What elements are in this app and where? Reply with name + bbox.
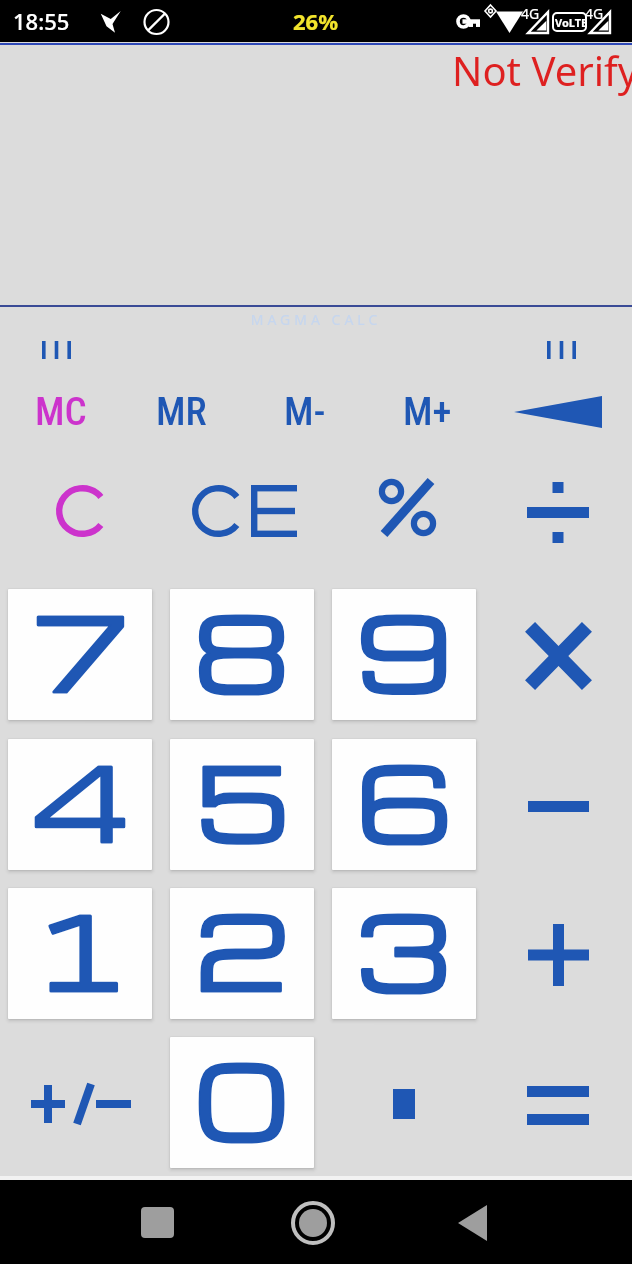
- staticText: 8: [194, 589, 290, 707]
- button[interactable]: Clear: [17, 461, 147, 561]
- button[interactable]: MC: [2, 382, 120, 442]
- button[interactable]: 0: [170, 1037, 314, 1168]
- staticText: 1: [32, 888, 128, 1006]
- button[interactable]: Equals: [488, 1040, 628, 1170]
- staticText: 5: [194, 739, 290, 857]
- staticText: MAGMA CALC: [0, 310, 632, 329]
- button[interactable]: Clear entry: [169, 461, 319, 561]
- staticText: M-: [284, 389, 326, 435]
- staticText: 4: [30, 739, 130, 857]
- staticText: 7: [32, 589, 129, 707]
- button[interactable]: Plus minus: [6, 1039, 156, 1169]
- button[interactable]: Decimal point: [334, 1039, 474, 1169]
- button[interactable]: Recents: [129, 1194, 186, 1251]
- staticText: VoLTE: [555, 15, 588, 30]
- staticText: M+: [403, 389, 452, 435]
- button[interactable]: 4: [8, 739, 152, 870]
- button[interactable]: Divide: [488, 462, 628, 562]
- button[interactable]: MR: [122, 382, 240, 442]
- staticText: 3: [356, 888, 452, 1006]
- button[interactable]: 3: [332, 888, 476, 1019]
- staticText: 9: [356, 589, 453, 707]
- button[interactable]: Menu: [32, 331, 80, 369]
- button[interactable]: 9: [332, 589, 476, 720]
- staticText: MC: [35, 389, 87, 435]
- staticText: 1: [32, 888, 128, 1006]
- staticText: MR: [156, 389, 207, 435]
- staticText: 0: [194, 1037, 290, 1155]
- staticText: 6: [356, 739, 452, 857]
- button[interactable]: 8: [170, 589, 314, 720]
- button[interactable]: Back: [444, 1194, 501, 1251]
- staticText: 26%: [293, 6, 339, 36]
- button[interactable]: Options: [537, 331, 585, 369]
- staticText: 8: [194, 589, 290, 707]
- button[interactable]: Home: [284, 1194, 341, 1251]
- button[interactable]: 2: [170, 888, 314, 1019]
- button[interactable]: Percent: [347, 457, 467, 557]
- button[interactable]: 6: [332, 739, 476, 870]
- button[interactable]: M-: [246, 382, 364, 442]
- staticText: 18:55: [13, 6, 70, 36]
- staticText: 3: [356, 888, 452, 1006]
- button[interactable]: 7: [8, 589, 152, 720]
- button[interactable]: Multiply: [498, 596, 618, 716]
- staticText: 0: [194, 1037, 290, 1155]
- staticText: Not Verify: [452, 43, 632, 97]
- staticText: 7: [32, 589, 129, 707]
- staticText: 5: [194, 739, 290, 857]
- button[interactable]: Subtract: [498, 746, 618, 866]
- button[interactable]: 5: [170, 739, 314, 870]
- staticText: 9: [356, 589, 453, 707]
- staticText: 2: [194, 888, 290, 1006]
- button[interactable]: Backspace: [498, 381, 618, 443]
- staticText: 2: [194, 888, 290, 1006]
- staticText: 4: [30, 739, 130, 857]
- button[interactable]: 1: [8, 888, 152, 1019]
- button[interactable]: M+: [368, 382, 486, 442]
- staticText: 4G: [521, 4, 540, 23]
- staticText: 6: [356, 739, 452, 857]
- button[interactable]: Add: [498, 895, 618, 1015]
- staticText: 4G: [585, 4, 604, 23]
